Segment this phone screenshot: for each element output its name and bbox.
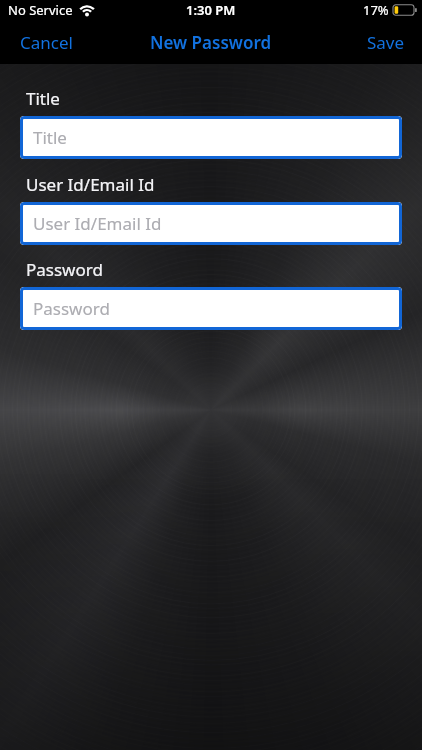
staticText: Title [26, 87, 60, 110]
staticText: Cancel [20, 31, 73, 54]
staticText: No Service [8, 1, 73, 19]
staticText: User Id/Email Id [33, 212, 162, 235]
button[interactable]: User Id/Email Id [20, 202, 402, 245]
button[interactable]: Save [359, 23, 413, 62]
staticText: Password [26, 258, 103, 281]
staticText: Title [33, 126, 67, 149]
staticText: 1:30 PM [186, 1, 236, 19]
button[interactable]: Cancel [12, 23, 81, 62]
staticText: User Id/Email Id [26, 173, 155, 196]
staticText: Password [33, 297, 110, 320]
staticText: Save [367, 31, 405, 54]
staticText: 17% [363, 1, 389, 19]
button[interactable]: Password [20, 287, 402, 330]
staticText: New Password [150, 31, 272, 54]
button[interactable]: Title [20, 116, 402, 159]
